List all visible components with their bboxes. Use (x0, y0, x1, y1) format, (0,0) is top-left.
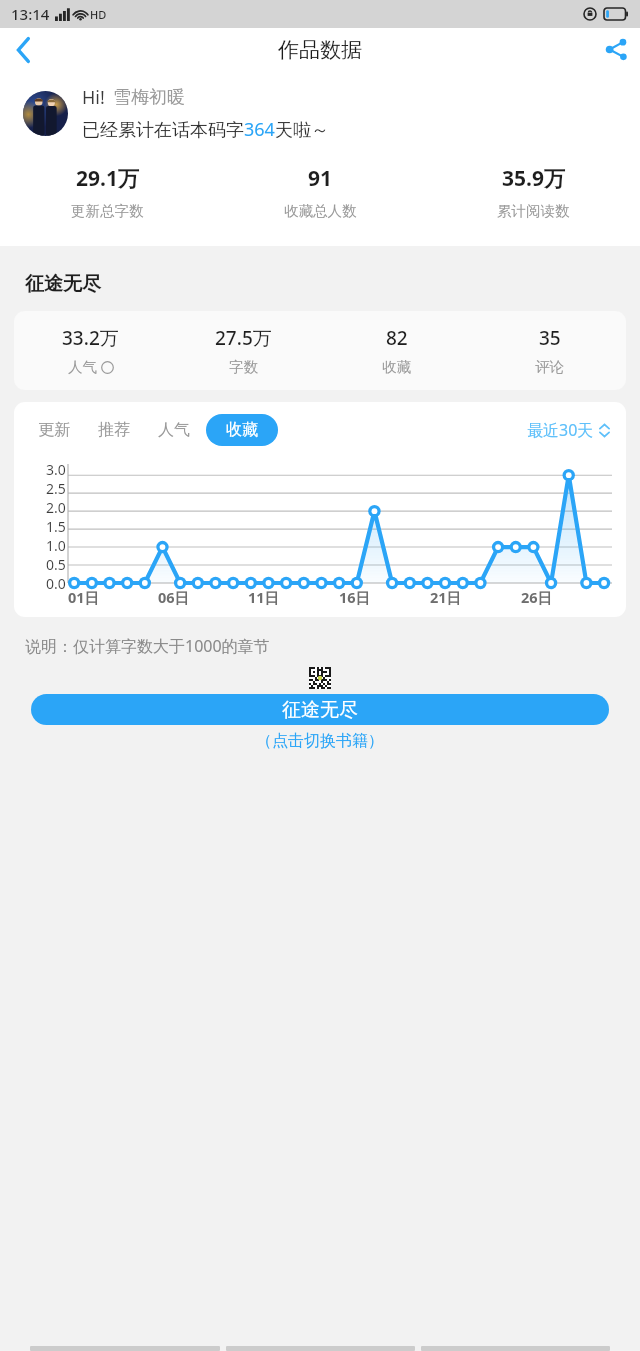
staticText: （点击切换书籍） (256, 731, 384, 751)
staticText: 3.0 (46, 460, 66, 479)
staticText: 21日 (430, 587, 462, 607)
staticText: 1.5 (46, 517, 66, 536)
button[interactable]: 82 (320, 325, 473, 376)
button[interactable]: 最近30天 (527, 419, 610, 441)
staticText: 2.0 (46, 498, 66, 517)
button[interactable]: 人气 (152, 414, 196, 446)
staticText: 作品数据 (278, 37, 362, 63)
staticText: 收藏总人数 (284, 202, 357, 220)
button[interactable]: 35 (473, 325, 626, 376)
staticText: 收藏 (226, 420, 258, 440)
staticText: 说明：仅计算字数大于1000的章节 (25, 635, 270, 657)
staticText: 已经累计在话本码字364天啦～ (82, 117, 329, 142)
button[interactable]: Share (592, 28, 640, 71)
staticText: 35.9万 (502, 164, 565, 193)
staticText: 征途无尽 (282, 698, 358, 722)
button[interactable]: 征途无尽 (31, 694, 609, 725)
staticText: 1.0 (46, 536, 66, 555)
staticText: 雪梅初暖 (113, 86, 185, 109)
staticText: 更新总字数 (71, 202, 144, 220)
button[interactable]: Hi! (23, 85, 620, 142)
staticText: 0.0 (46, 574, 66, 589)
staticText: 征途无尽 (25, 272, 101, 296)
staticText: 0.5 (46, 555, 66, 574)
button[interactable]: 更新 (32, 414, 76, 446)
button[interactable]: 91 (214, 164, 427, 220)
staticText: 11日 (248, 587, 280, 607)
button[interactable]: 收藏 (206, 414, 278, 446)
staticText: 推荐 (98, 420, 130, 440)
staticText: 82 (386, 325, 408, 351)
button[interactable]: 35.9万 (427, 164, 640, 220)
staticText: 13:14 (11, 4, 50, 24)
button[interactable]: Back (0, 28, 46, 71)
staticText: 更新 (38, 420, 70, 440)
staticText: 最近30天 (527, 419, 594, 441)
staticText: 2.5 (46, 479, 66, 498)
staticText: Hi! (82, 85, 105, 110)
staticText: 29.1万 (76, 164, 139, 193)
staticText: 27.5万 (215, 325, 272, 351)
staticText: 35 (539, 325, 561, 351)
button[interactable]: 33.2万 (14, 325, 167, 376)
staticText: 26日 (521, 587, 553, 607)
staticText: 16日 (339, 587, 371, 607)
staticText: 91 (308, 164, 333, 193)
staticText: 06日 (158, 587, 190, 607)
staticText: 评论 (535, 358, 564, 376)
staticText: HD (90, 7, 107, 22)
button[interactable]: 27.5万 (167, 325, 320, 376)
button[interactable]: 29.1万 (0, 164, 214, 220)
staticText: 字数 (229, 358, 258, 376)
staticText: 人气 (68, 358, 97, 376)
staticText: 01日 (68, 587, 100, 607)
staticText: 人气 (158, 420, 190, 440)
staticText: 33.2万 (62, 325, 119, 351)
staticText: 累计阅读数 (497, 202, 570, 220)
button[interactable]: 推荐 (92, 414, 136, 446)
staticText: 收藏 (382, 358, 411, 376)
